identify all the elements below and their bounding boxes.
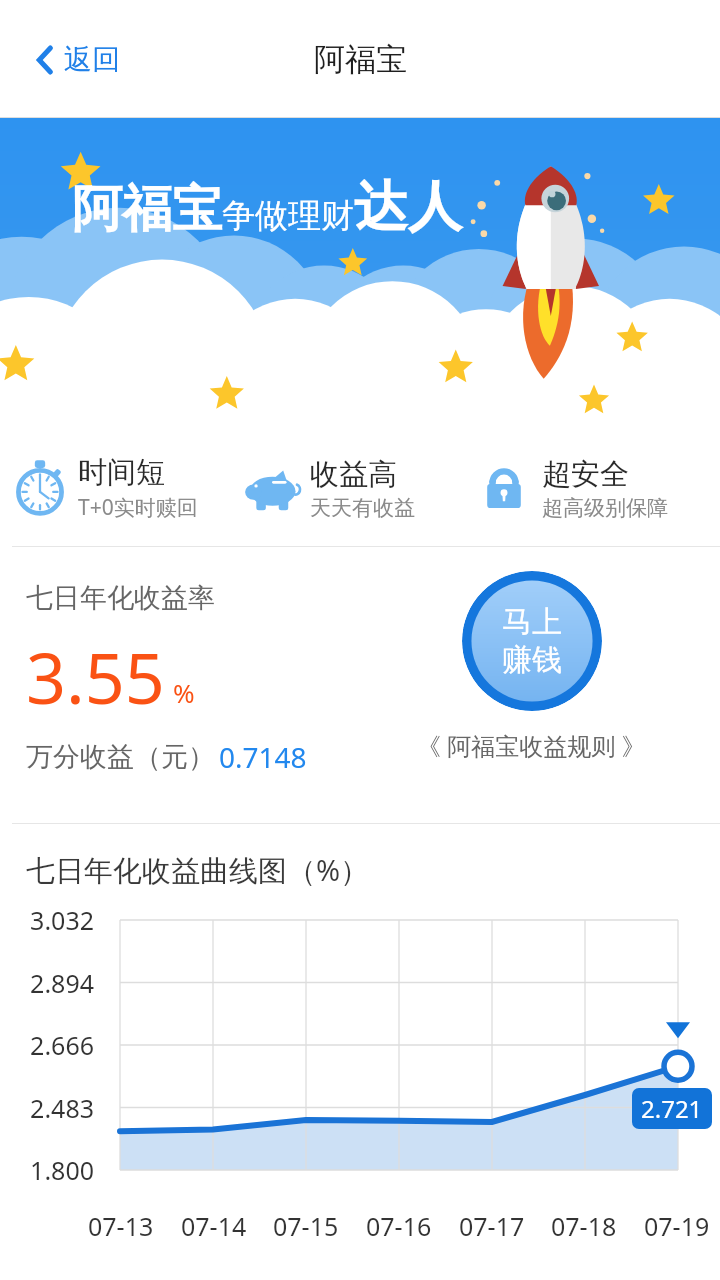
staticText: 07-15 (273, 1209, 339, 1243)
staticText: 07-13 (88, 1209, 154, 1243)
staticText: 07-16 (366, 1209, 432, 1243)
staticText: 七日年化收益曲线图（%） (26, 850, 370, 890)
staticText: 马上 (502, 603, 562, 641)
staticText: 2.666 (0, 1028, 94, 1062)
button[interactable]: 返回 (26, 32, 130, 87)
staticText: 0.7148 (219, 738, 307, 776)
button[interactable]: 超安全 (476, 450, 708, 527)
button[interactable]: 收益高 (244, 450, 476, 527)
staticText: 万分收益（元） (26, 740, 215, 774)
staticText: 07-14 (181, 1209, 247, 1243)
button[interactable]: 时间短 (12, 448, 244, 528)
staticText: 2.894 (0, 966, 94, 1000)
staticText: T+0实时赎回 (78, 493, 198, 522)
staticText: 《 阿福宝收益规则 》 (417, 729, 646, 762)
staticText: 收益高 (310, 456, 397, 493)
staticText: 2.483 (0, 1091, 94, 1125)
staticText: 1.800 (0, 1153, 94, 1187)
staticText: 07-19 (644, 1209, 710, 1243)
staticText: 2.721 (641, 1092, 703, 1125)
staticText: 七日年化收益率 (26, 581, 215, 615)
staticText: % (173, 675, 195, 710)
staticText: 达人 (354, 173, 462, 241)
staticText: 07-17 (459, 1209, 525, 1243)
staticText: 超高级别保障 (542, 495, 668, 521)
staticText: 天天有收益 (310, 495, 415, 521)
button[interactable]: 《 阿福宝收益规则 》 (411, 725, 652, 766)
staticText: 时间短 (78, 454, 165, 491)
staticText: 阿福宝 (72, 178, 222, 241)
staticText: 3.032 (0, 903, 94, 937)
staticText: 阿福宝 (314, 40, 407, 79)
staticText: 争做理财 (222, 195, 354, 237)
staticText: 超安全 (542, 456, 629, 493)
staticText: 赚钱 (502, 641, 562, 679)
staticText: 返回 (64, 42, 120, 77)
button[interactable]: 马上 (462, 571, 602, 711)
staticText: 3.55 (26, 629, 165, 724)
staticText: 07-18 (551, 1209, 617, 1243)
